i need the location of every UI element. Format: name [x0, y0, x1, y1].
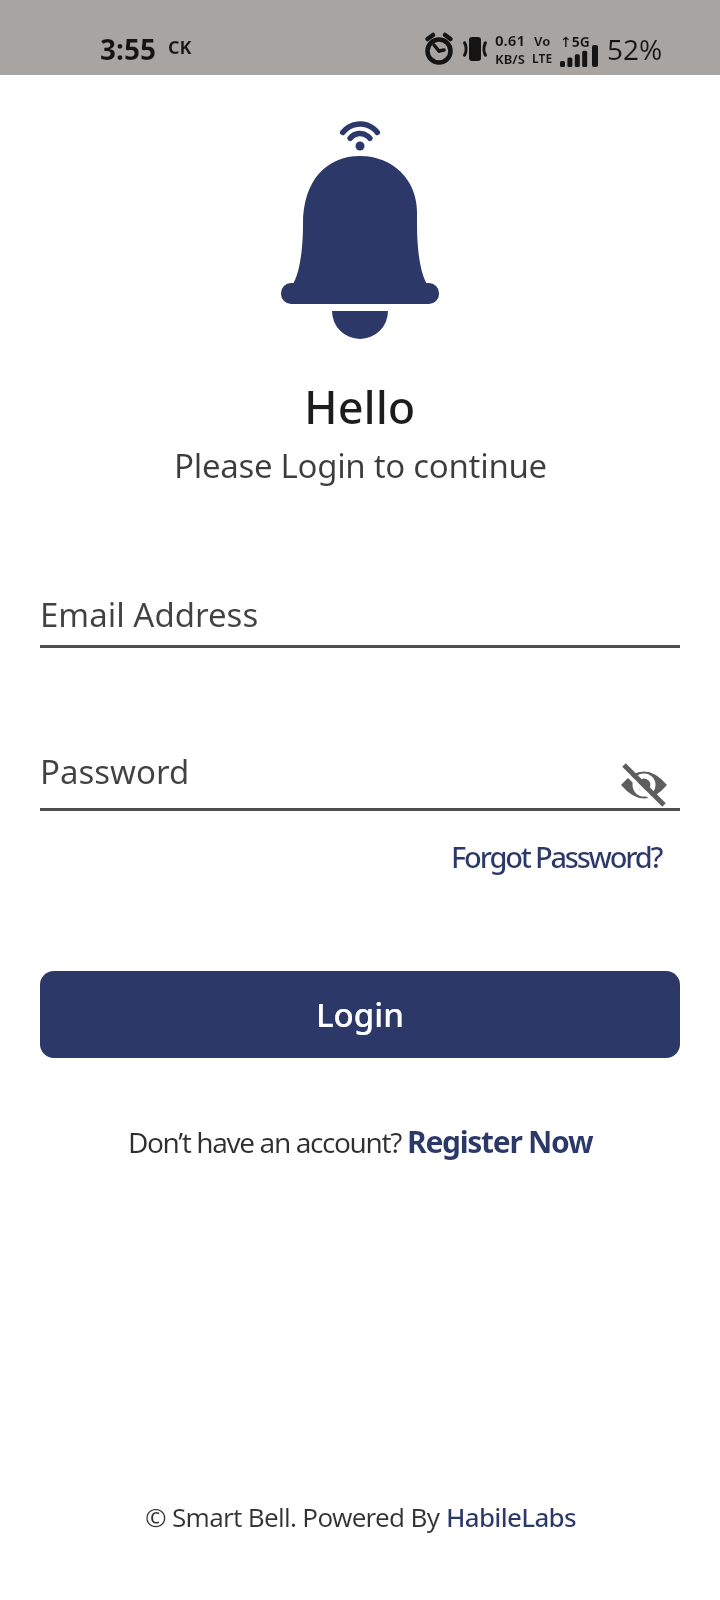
staticText: Vo — [534, 32, 551, 50]
staticText: HabileLabs — [446, 1499, 576, 1534]
button[interactable] — [616, 761, 672, 813]
button[interactable]: Email Address — [40, 592, 680, 632]
staticText: Password — [40, 749, 190, 789]
staticText: Email Address — [40, 592, 259, 632]
staticText: © Smart Bell. Powered By — [145, 1499, 446, 1534]
button[interactable]: HabileLabs — [446, 1499, 576, 1534]
staticText: Login — [316, 992, 404, 1037]
staticText: CK — [168, 35, 192, 60]
staticText: 3:55 — [100, 30, 156, 68]
staticText: Don’t have an account? — [128, 1123, 407, 1161]
staticText: KB/S — [495, 50, 525, 68]
staticText: Please Login to continue — [174, 443, 547, 487]
staticText: LTE — [532, 50, 553, 66]
staticText: ↑5G — [560, 32, 590, 51]
button[interactable]: Login — [40, 971, 680, 1058]
button[interactable]: Forgot Password? — [451, 836, 662, 876]
button[interactable]: Register Now — [407, 1121, 593, 1162]
staticText: 0.61 — [495, 30, 525, 50]
staticText: Hello — [304, 376, 416, 430]
staticText: 52% — [607, 30, 663, 68]
staticText: Register Now — [407, 1121, 593, 1162]
staticText: Forgot Password? — [451, 837, 662, 876]
button[interactable]: Password — [40, 749, 600, 789]
